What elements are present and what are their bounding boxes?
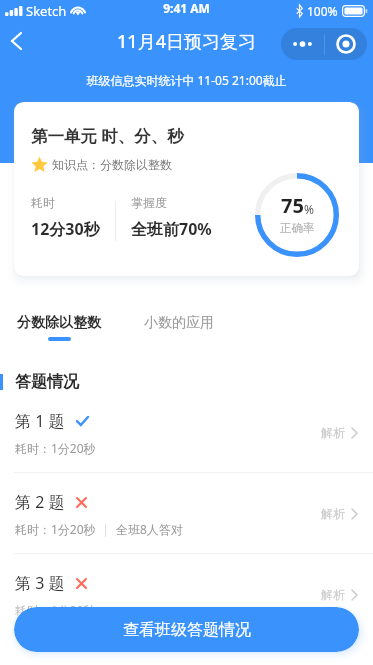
staticText: 11月4日预习复习 (0, 29, 373, 54)
staticText: 第一单元 时、分、秒 (31, 124, 184, 147)
button[interactable]: More options (281, 28, 324, 60)
button[interactable]: 第一单元 时、分、秒 (14, 102, 359, 276)
button[interactable]: 第 1 题 (0, 392, 373, 472)
staticText: 解析 (321, 587, 345, 602)
staticText: 75 (281, 192, 304, 219)
staticText: 100% (307, 3, 338, 19)
staticText: 耗时 (31, 195, 55, 210)
staticText: 耗时：1分20秒 (15, 440, 96, 456)
staticText: 知识点：分数除以整数 (52, 157, 172, 172)
staticText: 耗时：1分20秒 (15, 521, 96, 537)
staticText: 班级信息实时统计中 11-05 21:00截止 (0, 72, 373, 88)
staticText: 答题情况 (15, 372, 79, 392)
staticText: 解析 (321, 506, 345, 521)
staticText: | (96, 521, 116, 537)
staticText: 全班前70% (131, 218, 212, 240)
staticText: 第 1 题 (15, 410, 65, 432)
button[interactable]: Back (0, 22, 34, 66)
staticText: 全班8人答对 (116, 521, 183, 537)
staticText: 解析 (321, 425, 345, 440)
staticText: 正确率 (280, 221, 315, 235)
staticText: 小数的应用 (144, 314, 214, 332)
button[interactable]: 第 2 题 (0, 473, 373, 553)
button[interactable]: 查看班级答题情况 (14, 607, 359, 652)
button[interactable]: Close (324, 28, 367, 60)
staticText: 第 2 题 (15, 491, 65, 513)
button[interactable]: 分数除以整数 (17, 314, 101, 341)
staticText: 分数除以整数 (17, 314, 101, 332)
staticText: % (304, 201, 314, 217)
staticText: 查看班级答题情况 (123, 620, 251, 640)
staticText: 第 3 题 (15, 572, 65, 594)
button[interactable]: 小数的应用 (144, 314, 214, 341)
staticText: Sketch (26, 2, 67, 20)
staticText: 12分30秒 (31, 218, 100, 240)
staticText: 耗时：1分20秒 (15, 602, 96, 618)
button[interactable]: 第 3 题 (0, 554, 373, 634)
staticText: 9:41 AM (0, 0, 373, 16)
staticText: 掌握度 (131, 195, 167, 210)
